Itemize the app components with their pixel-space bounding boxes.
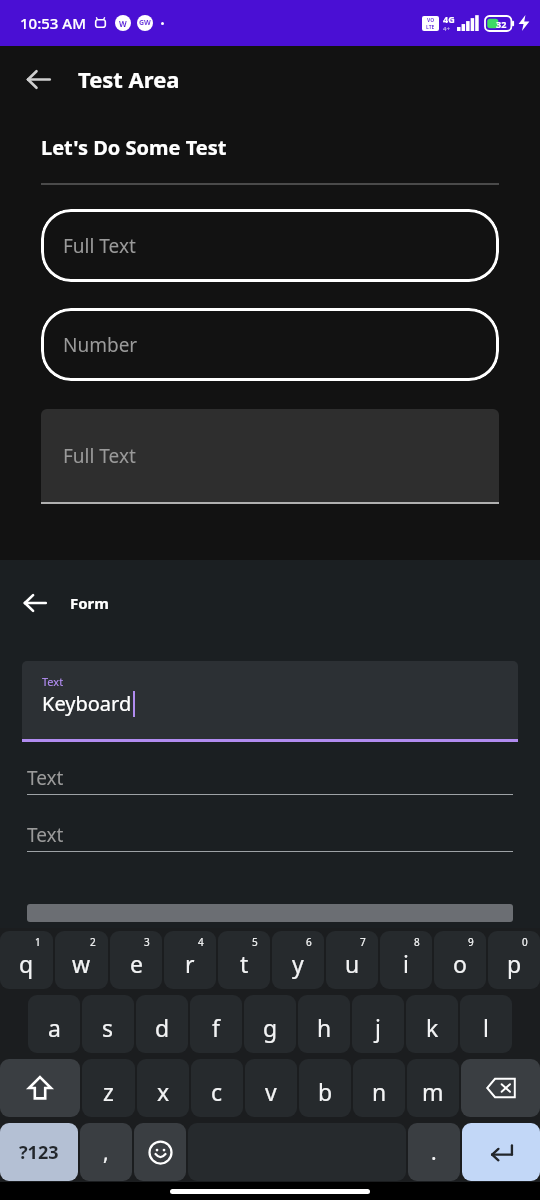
button[interactable]: x xyxy=(137,1059,189,1117)
staticText: s xyxy=(102,1012,114,1043)
button[interactable]: l xyxy=(460,995,512,1053)
staticText: b xyxy=(318,1076,333,1107)
staticText: W xyxy=(119,18,127,29)
staticText: Text xyxy=(42,674,64,689)
staticText: n xyxy=(372,1076,387,1107)
staticText: 32 xyxy=(496,18,507,30)
button[interactable]: Text xyxy=(27,762,513,795)
button[interactable]: . xyxy=(408,1123,460,1181)
button[interactable]: Back xyxy=(14,55,62,103)
button[interactable]: s xyxy=(82,995,134,1053)
staticText: y xyxy=(292,948,304,979)
staticText: . xyxy=(431,1138,437,1167)
staticText: Form xyxy=(70,593,109,613)
staticText: LTE xyxy=(426,24,435,31)
button[interactable]: r xyxy=(164,931,216,989)
staticText: Keyboard xyxy=(42,690,132,717)
staticText: p xyxy=(507,948,522,979)
button[interactable]: Backspace xyxy=(461,1059,540,1117)
button[interactable]: Full Text xyxy=(41,209,499,282)
staticText: h xyxy=(317,1012,332,1043)
staticText: 4 xyxy=(198,935,204,949)
staticText: 1 xyxy=(35,935,41,949)
staticText: Full Text xyxy=(63,233,136,259)
button[interactable]: Emoji xyxy=(134,1123,186,1181)
button[interactable]: Number xyxy=(41,308,499,381)
staticText: f xyxy=(212,1012,220,1043)
staticText: Full Text xyxy=(63,443,136,469)
button[interactable]: j xyxy=(352,995,404,1053)
button[interactable]: v xyxy=(245,1059,297,1117)
staticText: 0 xyxy=(522,935,528,949)
staticText: , xyxy=(103,1138,109,1167)
staticText: j xyxy=(375,1012,381,1043)
staticText: l xyxy=(483,1012,489,1043)
staticText: v xyxy=(265,1076,277,1107)
staticText: z xyxy=(103,1076,114,1107)
button[interactable]: h xyxy=(298,995,350,1053)
staticText: a xyxy=(48,1012,61,1043)
button[interactable]: c xyxy=(191,1059,243,1117)
staticText: 4G xyxy=(443,13,455,25)
button[interactable]: ?123 xyxy=(0,1123,78,1181)
staticText: 10:53 AM xyxy=(20,13,86,33)
button[interactable]: u xyxy=(326,931,378,989)
staticText: 4+ xyxy=(443,25,450,33)
staticText: q xyxy=(19,948,34,979)
button[interactable]: p xyxy=(488,931,540,989)
staticText: o xyxy=(453,948,467,979)
staticText: u xyxy=(345,948,360,979)
button[interactable]: Back xyxy=(14,582,56,624)
staticText: 6 xyxy=(306,935,312,949)
button[interactable]: i xyxy=(380,931,432,989)
button[interactable]: a xyxy=(28,995,80,1053)
button[interactable]: Enter xyxy=(462,1123,540,1181)
button[interactable]: w xyxy=(55,931,108,989)
button[interactable]: y xyxy=(272,931,324,989)
staticText: e xyxy=(130,948,143,979)
staticText: 8 xyxy=(414,935,420,949)
staticText: Text xyxy=(27,822,64,848)
staticText: Text xyxy=(27,765,64,791)
button[interactable]: d xyxy=(136,995,188,1053)
button[interactable]: , xyxy=(80,1123,132,1181)
staticText: Let's Do Some Test xyxy=(41,134,227,161)
button[interactable]: Text xyxy=(22,661,518,742)
button[interactable]: g xyxy=(244,995,296,1053)
staticText: w xyxy=(72,948,91,979)
staticText: Test Area xyxy=(78,64,180,94)
button[interactable]: k xyxy=(406,995,458,1053)
staticText: 7 xyxy=(360,935,366,949)
button[interactable]: z xyxy=(82,1059,135,1117)
staticText: ?123 xyxy=(19,1140,59,1165)
button[interactable]: Text xyxy=(27,819,513,852)
staticText: x xyxy=(157,1076,170,1107)
staticText: Number xyxy=(63,332,138,358)
staticText: k xyxy=(426,1012,439,1043)
staticText: c xyxy=(211,1076,223,1107)
button[interactable]: Full Text xyxy=(41,409,499,504)
button[interactable]: Shift xyxy=(0,1059,80,1117)
staticText: 2 xyxy=(90,935,96,949)
staticText: VO xyxy=(427,17,435,24)
staticText: i xyxy=(403,948,409,979)
staticText: 3 xyxy=(144,935,150,949)
button[interactable]: q xyxy=(0,931,53,989)
staticText: r xyxy=(185,948,195,979)
staticText: 9 xyxy=(468,935,474,949)
staticText: g xyxy=(263,1012,278,1043)
staticText: d xyxy=(155,1012,170,1043)
staticText: 5 xyxy=(252,935,258,949)
staticText: m xyxy=(422,1076,444,1107)
button[interactable]: f xyxy=(190,995,242,1053)
button[interactable]: m xyxy=(407,1059,459,1117)
button[interactable]: n xyxy=(353,1059,405,1117)
button[interactable]: e xyxy=(110,931,162,989)
button[interactable]: b xyxy=(299,1059,351,1117)
button[interactable]: o xyxy=(434,931,486,989)
button[interactable]: t xyxy=(218,931,270,989)
staticText: GW xyxy=(139,18,151,28)
staticText: t xyxy=(240,948,249,979)
